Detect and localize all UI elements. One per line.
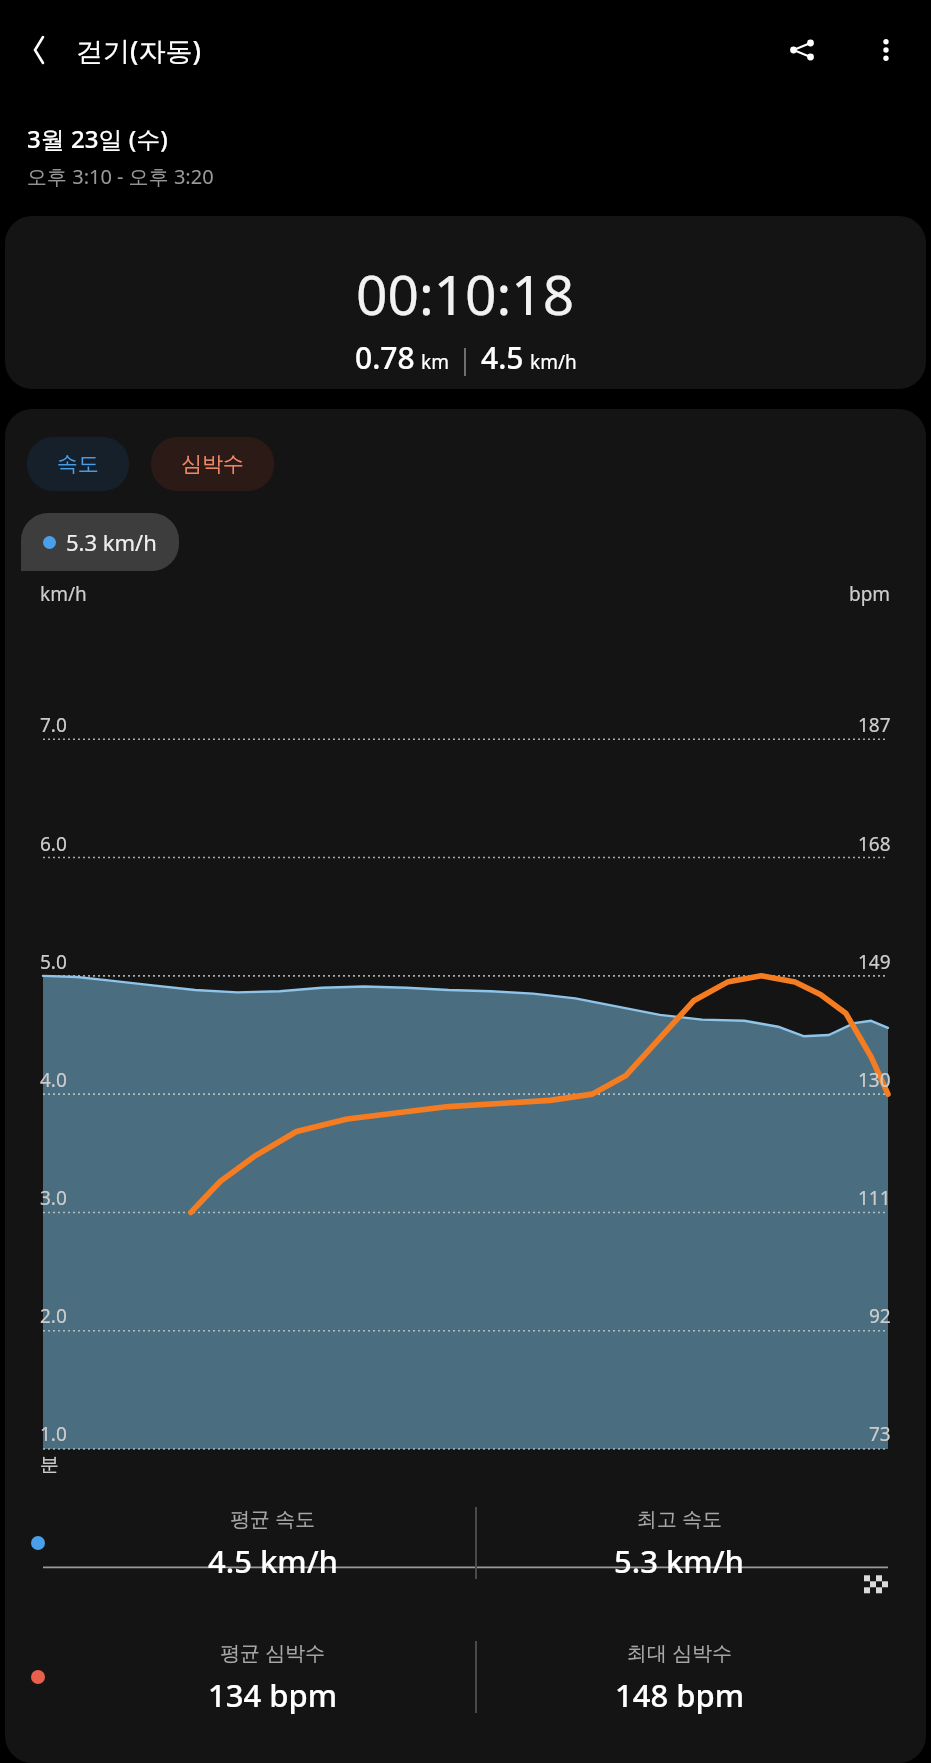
staticText: 7.0: [40, 712, 67, 738]
staticText: 149: [858, 949, 891, 975]
staticText: 3.0: [40, 1185, 67, 1211]
staticText: 심박수: [181, 451, 244, 477]
staticText: 평균 심박수: [220, 1639, 326, 1666]
button[interactable]: Share: [773, 21, 831, 79]
button[interactable]: More options: [857, 21, 915, 79]
staticText: km/h: [530, 349, 577, 375]
staticText: km/h: [40, 581, 87, 607]
staticText: 4.5 km/h: [208, 1540, 339, 1582]
staticText: 111: [858, 1185, 891, 1211]
button[interactable]: 속도: [27, 437, 129, 491]
staticText: 최대 심박수: [627, 1639, 733, 1666]
staticText: 3월 23일 (수): [27, 122, 168, 155]
staticText: 6.0: [40, 831, 67, 857]
staticText: 걷기(자동): [76, 32, 201, 69]
staticText: 00:10:18: [356, 256, 575, 331]
staticText: 0.78: [355, 337, 415, 378]
staticText: 속도: [57, 451, 99, 477]
staticText: 187: [858, 712, 891, 738]
staticText: km: [421, 349, 449, 375]
button[interactable]: Back: [10, 21, 68, 79]
staticText: 92: [869, 1303, 891, 1329]
staticText: 2.0: [40, 1303, 67, 1329]
staticText: 평균 속도: [230, 1505, 316, 1532]
staticText: 오후 3:10 - 오후 3:20: [27, 163, 214, 190]
staticText: 134 bpm: [208, 1674, 338, 1716]
staticText: 최고 속도: [637, 1505, 723, 1532]
staticText: 130: [858, 1067, 891, 1093]
staticText: 1.0: [40, 1421, 67, 1447]
staticText: bpm: [849, 581, 891, 607]
staticText: 73: [869, 1421, 891, 1447]
staticText: 4.5: [481, 337, 524, 378]
staticText: 5.3 km/h: [66, 527, 157, 557]
staticText: 분: [40, 1453, 59, 1477]
staticText: 5.3 km/h: [614, 1540, 745, 1582]
staticText: 5.0: [40, 949, 67, 975]
button[interactable]: 심박수: [151, 437, 274, 491]
staticText: 148 bpm: [615, 1674, 745, 1716]
button[interactable]: 00:10:18: [5, 216, 926, 389]
staticText: 168: [858, 831, 891, 857]
staticText: 4.0: [40, 1067, 67, 1093]
